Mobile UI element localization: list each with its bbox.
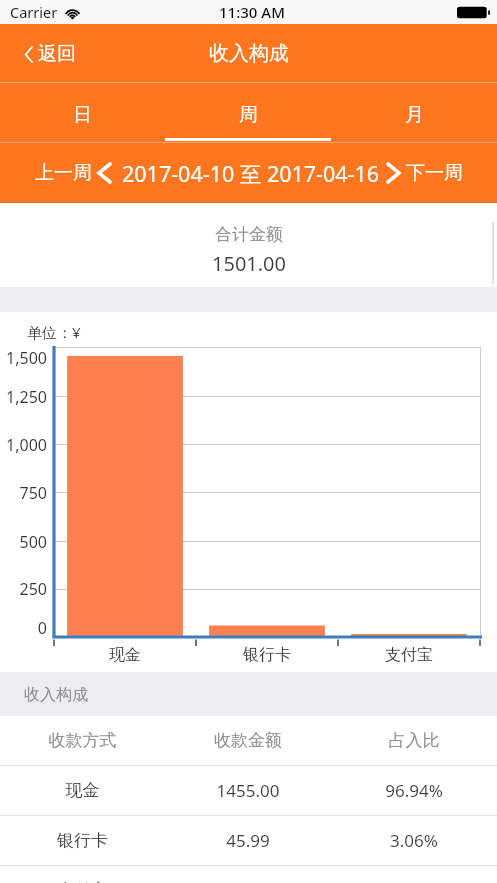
- staticText: 下一周: [406, 161, 463, 185]
- button[interactable]: Next week: [386, 155, 463, 191]
- staticText: 11:30 AM: [219, 2, 285, 22]
- staticText: 收入构成: [209, 41, 289, 66]
- button[interactable]: 支付宝: [0, 866, 497, 883]
- staticText: 现金: [0, 780, 165, 801]
- staticText: 支付宝: [385, 645, 433, 665]
- staticText: 1,250: [6, 386, 47, 408]
- staticText: 收款方式: [0, 730, 165, 751]
- staticText: 合计金额: [215, 224, 283, 245]
- staticText: 3.06%: [331, 829, 497, 852]
- staticText: 日: [73, 103, 92, 127]
- staticText: 收款金额: [165, 730, 331, 751]
- staticText: 1,000: [6, 434, 47, 456]
- button[interactable]: 现金: [0, 766, 497, 815]
- staticText: 返回: [38, 42, 76, 66]
- button[interactable]: 月: [331, 83, 497, 143]
- other: Previous week: [97, 162, 112, 184]
- staticText: 96.94%: [331, 779, 497, 802]
- staticText: 单位：¥: [27, 322, 81, 342]
- staticText: 45.99: [165, 829, 331, 852]
- button[interactable]: 银行卡: [0, 816, 497, 865]
- staticText: 2017-04-10 至 2017-04-16: [122, 159, 380, 188]
- staticText: 现金: [109, 645, 141, 665]
- staticText: 1501.00: [212, 250, 286, 277]
- staticText: 0: [37, 617, 47, 639]
- button[interactable]: 日: [0, 83, 165, 143]
- button[interactable]: 收款方式: [0, 716, 497, 765]
- button[interactable]: 返回: [17, 34, 84, 74]
- other: Next week: [386, 162, 401, 184]
- staticText: 支付宝: [0, 880, 165, 883]
- staticText: 1455.00: [165, 779, 331, 802]
- staticText: 上一周: [35, 161, 92, 185]
- staticText: 月: [405, 103, 424, 127]
- staticText: 1,500: [6, 347, 47, 369]
- staticText: 银行卡: [0, 830, 165, 851]
- button[interactable]: 周: [165, 83, 331, 143]
- staticText: 收入构成: [24, 685, 88, 705]
- staticText: 750: [19, 482, 47, 504]
- staticText: 250: [19, 578, 47, 600]
- button[interactable]: 上一周: [35, 155, 112, 191]
- staticText: 500: [19, 531, 47, 553]
- staticText: 占入比: [331, 730, 497, 751]
- button[interactable]: 收入构成: [0, 672, 497, 716]
- staticText: 银行卡: [243, 645, 291, 665]
- staticText: Carrier: [10, 2, 58, 22]
- staticText: 周: [239, 103, 258, 127]
